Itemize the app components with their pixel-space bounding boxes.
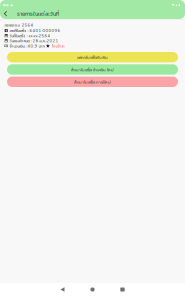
button[interactable]: สำเนาใบเสร็จ ภาษีใหม่ <box>7 77 178 87</box>
button[interactable]: Home <box>77 283 107 296</box>
staticText: กรกฎาคม 2564 <box>4 22 33 28</box>
staticText: จำนวนเงิน : 40.9 บาท <box>9 43 44 49</box>
staticText: ค้างชำระ <box>52 43 65 48</box>
button[interactable]: แสดงใบเสร็จรับเงิน <box>7 52 178 62</box>
button[interactable]: Recent apps <box>107 283 137 296</box>
staticText: แสดงใบเสร็จรับเงิน <box>77 54 108 60</box>
staticText: สำเนาใบเสร็จ ภาษีใหม่ <box>74 79 111 85</box>
staticText: วันครบกำหนด : 28-ม.ค.-2021 <box>9 38 58 44</box>
button[interactable]: Back <box>47 283 77 296</box>
staticText: สำเนาใบเสร็จ ชำระเงิน ใหม่ <box>71 67 114 72</box>
button[interactable]: Back <box>0 8 17 19</box>
staticText: เลขที่ใบเสร็จ : 6401-000096 <box>9 28 60 33</box>
staticText: วันที่ใบเสร็จ : xx-xx-2564 <box>9 33 50 38</box>
button[interactable]: สำเนาใบเสร็จ ชำระเงิน ใหม่ <box>7 64 178 75</box>
staticText: รายการในแต่ละวันที่ <box>17 10 59 17</box>
